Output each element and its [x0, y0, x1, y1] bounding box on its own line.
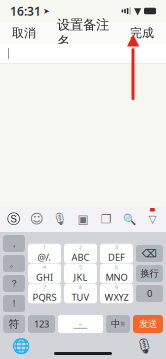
- button[interactable]: ，: [3, 235, 25, 252]
- staticText: ▽: [148, 213, 156, 225]
- staticText: ▣: [77, 212, 88, 226]
- staticText: 符: [8, 317, 19, 330]
- button[interactable]: Voice input: [48, 207, 71, 231]
- staticText: 1: [43, 244, 46, 251]
- button[interactable]: 符: [3, 315, 25, 333]
- staticText: ➤: [43, 6, 50, 16]
- staticText: 123: [34, 318, 49, 330]
- staticText: 6: [115, 264, 118, 271]
- staticText: 完成: [130, 26, 154, 40]
- staticText: TUV: [71, 291, 89, 303]
- button[interactable]: Chinese English toggle: [106, 315, 130, 333]
- staticText: 9: [115, 284, 118, 291]
- button[interactable]: 。: [3, 255, 25, 272]
- staticText: 🔍: [123, 213, 136, 225]
- button[interactable]: 4: [28, 265, 61, 282]
- staticText: ABC: [71, 251, 89, 263]
- staticText: ，: [9, 238, 18, 249]
- button[interactable]: 123: [28, 315, 55, 333]
- button[interactable]: 2: [64, 245, 97, 262]
- button[interactable]: 3: [100, 245, 133, 262]
- staticText: JKL: [73, 271, 87, 283]
- staticText: ！: [9, 298, 18, 309]
- staticText: 。: [9, 258, 18, 269]
- button[interactable]: 取消: [4, 20, 44, 46]
- staticText: 换行: [140, 268, 158, 279]
- staticText: WXYZ: [104, 291, 128, 303]
- staticText: GHI: [36, 271, 53, 283]
- staticText: 8: [79, 284, 82, 291]
- button[interactable]: Switch keyboard: [4, 334, 38, 358]
- button[interactable]: 发送: [133, 315, 163, 333]
- button[interactable]: 7: [28, 285, 61, 302]
- button[interactable]: 9: [100, 285, 133, 302]
- staticText: ？: [9, 278, 18, 289]
- button[interactable]: 1: [28, 245, 61, 262]
- staticText: 4: [43, 264, 46, 271]
- button[interactable]: 5: [64, 265, 97, 282]
- button[interactable]: Photos: [95, 207, 118, 231]
- button[interactable]: 换行: [136, 265, 163, 282]
- staticText: ▼: [134, 6, 141, 16]
- button[interactable]: ！: [3, 295, 25, 312]
- staticText: MNO: [105, 271, 127, 283]
- staticText: 英: [120, 321, 125, 327]
- button[interactable]: ？: [3, 275, 25, 292]
- button[interactable]: Input method: [2, 207, 25, 231]
- staticText: 3: [115, 244, 118, 251]
- staticText: Ⓢ: [7, 211, 20, 227]
- button[interactable]: Search: [118, 207, 141, 231]
- button[interactable]: Delete: [136, 245, 163, 262]
- button[interactable]: 8: [64, 285, 97, 302]
- staticText: 0: [147, 287, 152, 300]
- button[interactable]: Space: [58, 315, 103, 333]
- staticText: 设置备注名: [57, 17, 109, 49]
- staticText: 🌐: [12, 338, 30, 354]
- button[interactable]: Emoji: [25, 207, 48, 231]
- staticText: DEF: [108, 251, 125, 263]
- staticText: ☺: [30, 211, 44, 226]
- staticText: 2: [79, 244, 82, 251]
- button[interactable]: 完成: [122, 20, 162, 46]
- staticText: 发送: [139, 318, 157, 330]
- button[interactable]: 6: [100, 265, 133, 282]
- staticText: 🎙: [52, 212, 67, 226]
- staticText: 7: [43, 284, 46, 291]
- button[interactable]: Hide keyboard: [141, 207, 164, 231]
- staticText: ⌄: [77, 319, 83, 327]
- staticText: 中: [111, 318, 120, 330]
- button[interactable]: 0: [136, 285, 163, 302]
- button[interactable]: Keyboard: [71, 207, 94, 231]
- staticText: PQRS: [32, 291, 56, 303]
- button[interactable]: Dictation: [127, 334, 162, 358]
- staticText: @/.: [37, 251, 51, 263]
- staticText: ❐: [101, 212, 112, 226]
- staticText: ▲: [127, 30, 139, 48]
- staticText: ⌫: [142, 247, 157, 259]
- staticText: 🎙: [135, 338, 154, 354]
- staticText: 取消: [12, 26, 36, 40]
- staticText: 5: [79, 264, 82, 271]
- staticText: 16:31: [10, 3, 41, 19]
